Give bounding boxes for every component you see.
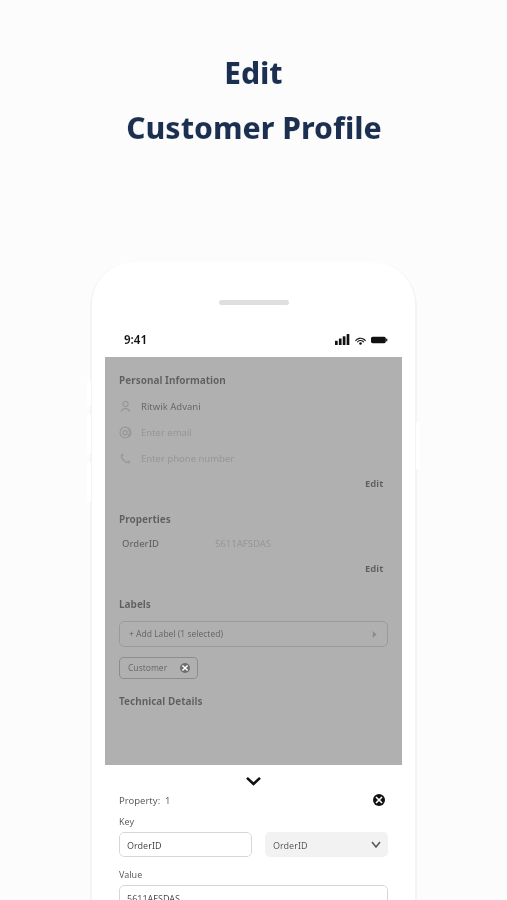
staticText: Labels [119, 597, 151, 611]
staticText: Customer Profile [126, 107, 382, 148]
button[interactable]: Collapse sheet [119, 773, 388, 787]
staticText: OrderID [273, 839, 308, 851]
staticText: 5611AFSDAS [127, 892, 181, 900]
staticText: Property: 1 [119, 794, 171, 807]
staticText: Technical Details [119, 694, 203, 708]
button[interactable]: + Add Label (1 selected) [119, 621, 388, 647]
staticText: Edit [365, 562, 384, 575]
button[interactable]: OrderID [265, 832, 388, 857]
staticText: Customer [128, 662, 168, 674]
staticText: Enter email [141, 426, 192, 439]
staticText: Edit [224, 52, 283, 93]
staticText: Enter phone number [141, 452, 235, 465]
button[interactable]: Edit [361, 475, 388, 492]
other: Remove label [180, 663, 190, 673]
staticText: Personal Information [119, 373, 226, 387]
staticText: Ritwik Advani [141, 400, 201, 413]
staticText: + Add Label (1 selected) [129, 628, 224, 640]
button[interactable]: Customer [119, 657, 198, 679]
button[interactable]: Delete property [370, 791, 388, 809]
staticText: Value [119, 868, 143, 880]
staticText: OrderID [122, 537, 159, 550]
button[interactable]: OrderID [119, 832, 252, 857]
staticText: Key [119, 815, 135, 827]
staticText: Edit [365, 477, 384, 490]
staticText: 9:41 [124, 332, 147, 348]
staticText: Properties [119, 512, 171, 526]
button[interactable]: 5611AFSDAS [119, 885, 388, 900]
staticText: 5611AFSDAS [215, 537, 271, 550]
staticText: OrderID [127, 839, 162, 851]
button[interactable]: Edit [361, 560, 388, 577]
